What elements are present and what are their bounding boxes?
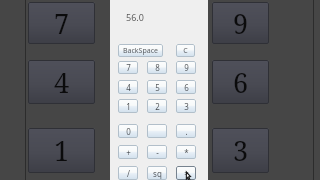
button[interactable]: /	[118, 166, 138, 180]
button[interactable]: BackSpace	[118, 44, 163, 57]
button[interactable]: +	[118, 145, 138, 159]
staticText: 6	[233, 64, 249, 101]
button[interactable]: =	[176, 166, 196, 180]
staticText: 4	[54, 64, 70, 101]
staticText: 8	[155, 62, 160, 73]
staticText: -	[156, 147, 159, 158]
staticText: 6	[184, 82, 189, 93]
staticText: 7	[54, 5, 70, 42]
staticText: +	[126, 147, 131, 158]
staticText: 2	[155, 101, 160, 112]
button[interactable]: 9	[212, 2, 269, 44]
staticText: /	[127, 168, 130, 179]
staticText: 9	[184, 62, 189, 73]
button[interactable]: 0	[118, 124, 138, 138]
staticText: 3	[233, 132, 249, 169]
staticText: 1	[126, 101, 131, 112]
staticText: *	[184, 147, 189, 158]
staticText: 1	[54, 132, 70, 169]
button[interactable]: 3	[176, 99, 196, 113]
staticText: 56.0	[126, 11, 144, 23]
staticText: 0	[126, 126, 131, 137]
staticText: 4	[126, 82, 131, 93]
staticText: 5	[155, 82, 160, 93]
button[interactable]: 9	[176, 61, 196, 74]
button[interactable]: 6	[176, 80, 196, 94]
other: Pointer	[186, 172, 192, 180]
button[interactable]: .	[176, 124, 196, 138]
button[interactable]: 3	[212, 128, 269, 173]
button[interactable]: 7	[118, 61, 138, 74]
button[interactable]: 5	[147, 80, 167, 94]
staticText: BackSpace	[123, 46, 158, 56]
button[interactable]: -	[147, 145, 167, 159]
staticText: 7	[126, 62, 131, 73]
button[interactable]: *	[176, 145, 196, 159]
button[interactable]: sq	[147, 166, 167, 180]
staticText: 9	[233, 5, 249, 42]
button[interactable]: C	[176, 44, 195, 57]
button[interactable]: 4	[28, 60, 95, 104]
button[interactable]	[147, 124, 167, 138]
staticText: 3	[184, 101, 189, 112]
button[interactable]: 1	[118, 99, 138, 113]
staticText: C	[183, 46, 188, 56]
button[interactable]: 1	[28, 128, 95, 173]
button[interactable]: 7	[28, 2, 95, 44]
staticText: .	[185, 126, 188, 137]
button[interactable]: 4	[118, 80, 138, 94]
button[interactable]: 8	[147, 61, 167, 74]
button[interactable]: 6	[212, 60, 269, 104]
staticText: =	[184, 168, 189, 179]
button[interactable]: 2	[147, 99, 167, 113]
staticText: sq	[153, 168, 162, 179]
